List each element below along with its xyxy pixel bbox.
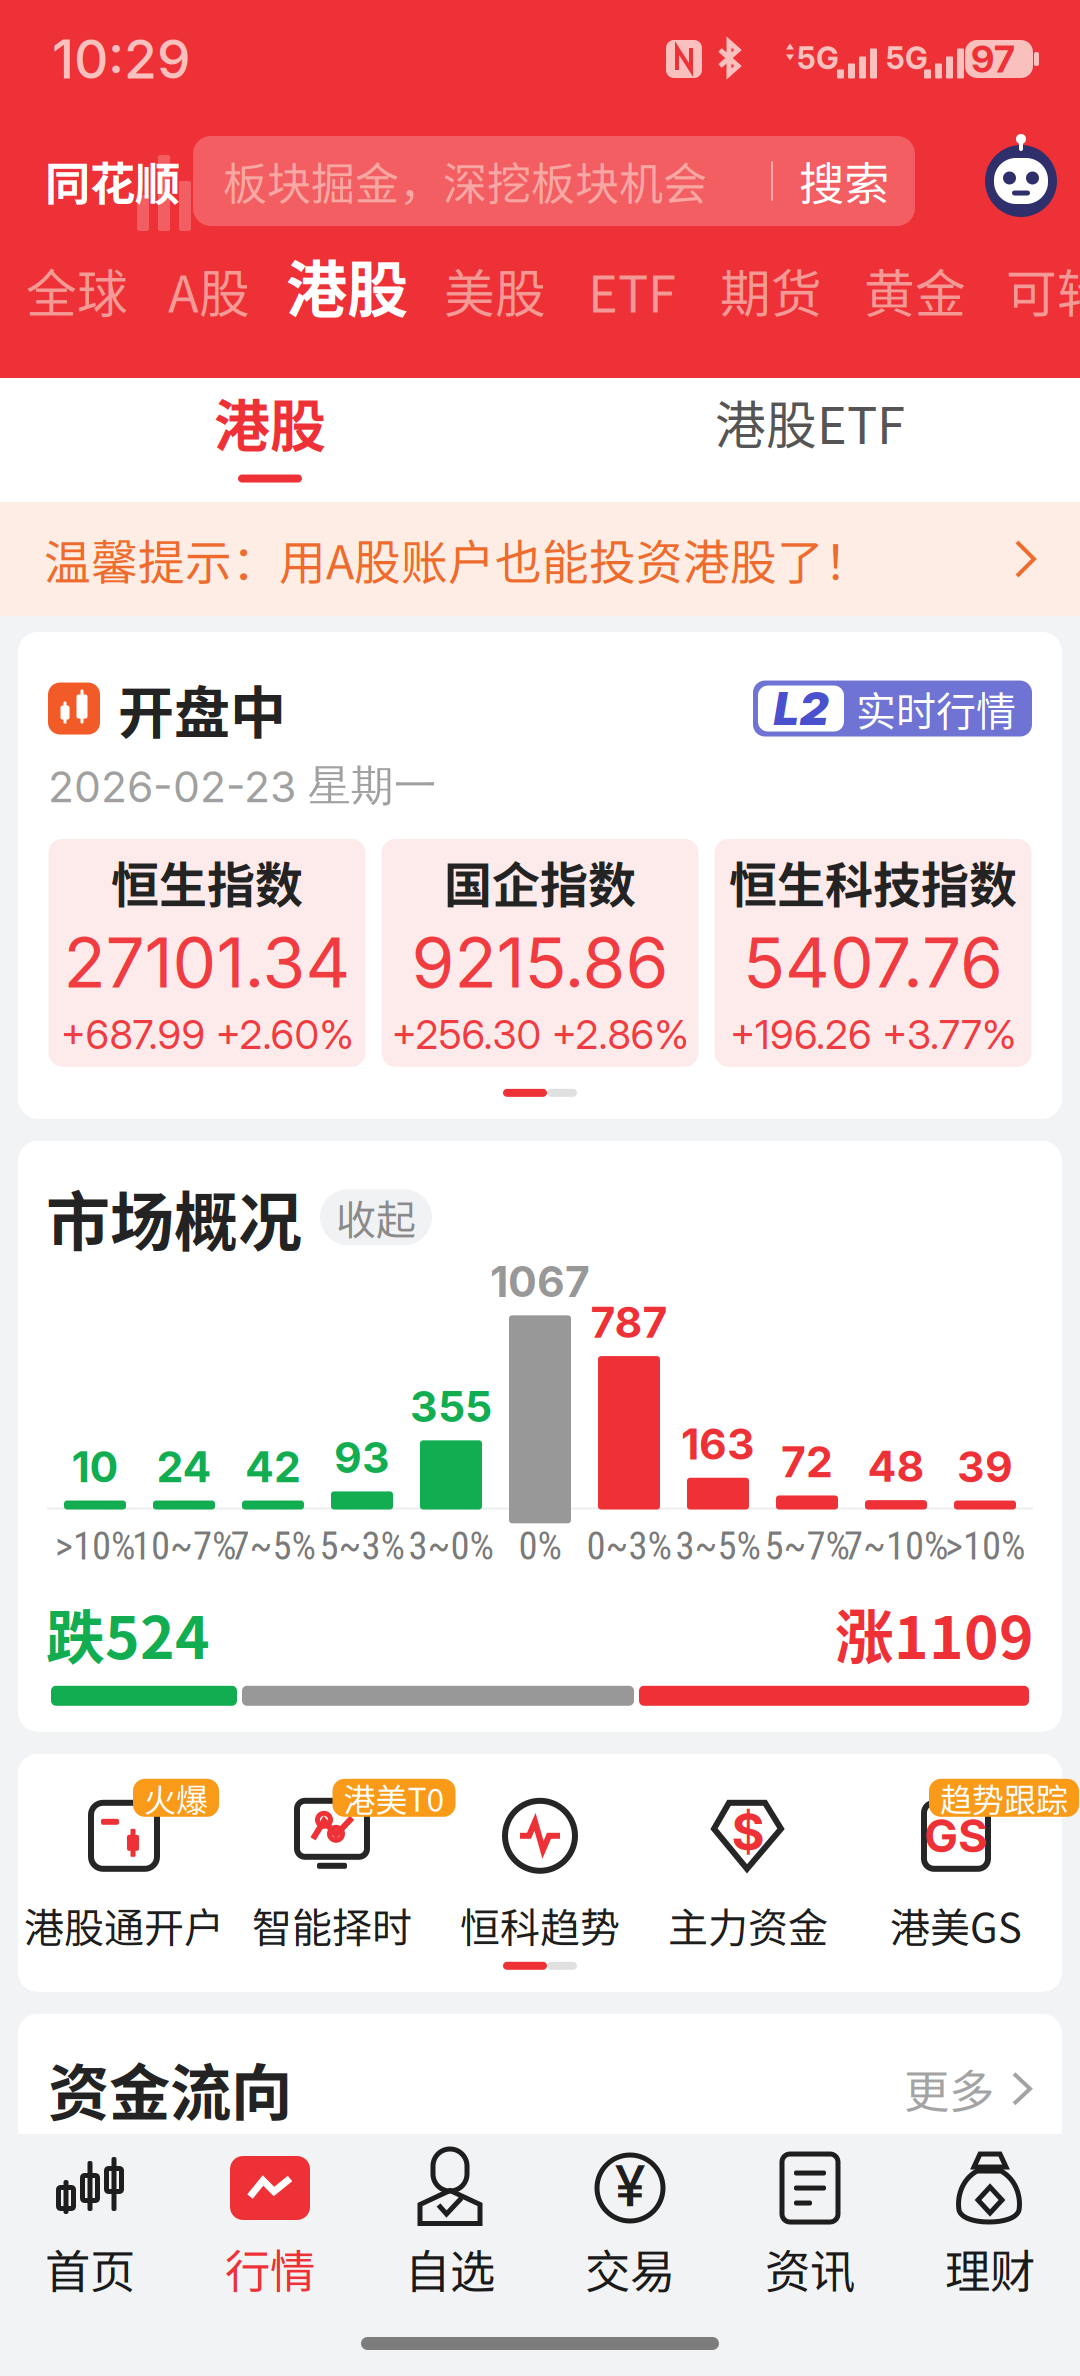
button[interactable]: AI assistant xyxy=(984,144,1058,218)
staticText: 理财 xyxy=(945,2236,1035,2302)
staticText: 93 xyxy=(334,1432,390,1483)
button[interactable]: ¥ xyxy=(540,2134,720,2302)
button[interactable]: 资讯 xyxy=(720,2134,900,2302)
staticText: 港股 xyxy=(214,381,326,463)
staticText: 3~0% xyxy=(408,1523,493,1569)
staticText: 7~5% xyxy=(230,1523,315,1569)
staticText: ETF xyxy=(588,254,676,327)
staticText: 板块掘金，深挖板块机会 xyxy=(223,149,707,213)
staticText: 9215.86 xyxy=(411,920,668,1004)
staticText: GS xyxy=(924,1808,988,1863)
button[interactable]: 首页 xyxy=(0,2134,180,2302)
staticText: 10:29 xyxy=(52,27,191,91)
staticText: >10% xyxy=(945,1523,1025,1569)
staticText: 温馨提示：用A股账户也能投资港股了！ xyxy=(44,525,871,593)
button[interactable]: 理财 xyxy=(900,2134,1080,2302)
staticText: 787 xyxy=(590,1296,667,1348)
staticText: 10 xyxy=(71,1441,118,1492)
button[interactable]: $ xyxy=(644,1776,852,1952)
staticText: 可转债 xyxy=(1006,254,1080,327)
staticText: 同花顺 xyxy=(45,148,180,214)
button[interactable]: ETF xyxy=(566,254,698,330)
staticText: 首页 xyxy=(45,2236,135,2302)
staticText: ¥ xyxy=(614,2152,645,2220)
button[interactable]: 国企指数 xyxy=(381,839,698,1067)
staticText: +687.99 +2.60% xyxy=(60,1010,353,1059)
staticText: +196.26 +3.77% xyxy=(730,1010,1016,1059)
button[interactable]: 美股 xyxy=(424,254,566,330)
staticText: 涨1109 xyxy=(835,1591,1034,1676)
staticText: 27101.34 xyxy=(63,920,350,1004)
button[interactable]: 港股ETF xyxy=(540,378,1080,502)
staticText: 趋势跟踪 xyxy=(940,1775,1068,1821)
staticText: $ xyxy=(731,1801,764,1862)
staticText: 行情 xyxy=(225,2236,315,2302)
button[interactable]: A股 xyxy=(148,254,270,330)
button[interactable]: 恒科趋势 xyxy=(436,1776,644,1952)
staticText: 自选 xyxy=(405,2236,495,2302)
button[interactable]: 板块掘金，深挖板块机会 xyxy=(193,136,915,226)
staticText: >10% xyxy=(55,1523,135,1569)
staticText: 收起 xyxy=(336,1188,416,1246)
staticText: 美股 xyxy=(444,254,546,327)
button[interactable]: GS xyxy=(852,1776,1060,1952)
staticText: 5G xyxy=(886,39,928,76)
button[interactable]: 黄金 xyxy=(844,254,986,330)
staticText: 1067 xyxy=(490,1256,590,1307)
staticText: 42 xyxy=(245,1441,301,1492)
staticText: 期货 xyxy=(720,254,822,327)
staticText: 智能择时 xyxy=(252,1896,412,1954)
button[interactable]: 港股 xyxy=(0,378,540,502)
staticText: 资讯 xyxy=(765,2236,855,2302)
staticText: +256.30 +2.86% xyxy=(391,1010,688,1059)
staticText: 355 xyxy=(410,1381,492,1432)
staticText: 0~3% xyxy=(586,1523,671,1569)
staticText: 3~5% xyxy=(675,1523,760,1569)
staticText: 港美T0 xyxy=(343,1775,444,1821)
staticText: 全球 xyxy=(26,254,128,327)
staticText: 2026-02-23 星期一 xyxy=(48,759,437,813)
staticText: 5~3% xyxy=(319,1523,404,1569)
staticText: 交易 xyxy=(585,2236,675,2302)
staticText: 恒科趋势 xyxy=(460,1896,620,1954)
button[interactable]: 恒生科技指数 xyxy=(714,839,1031,1067)
button[interactable]: 火爆 xyxy=(20,1776,228,1952)
staticText: 39 xyxy=(957,1441,1013,1492)
staticText: A股 xyxy=(168,254,250,327)
button[interactable]: 更多 xyxy=(904,2056,1032,2122)
button[interactable]: 温馨提示：用A股账户也能投资港股了！ xyxy=(0,502,1080,616)
staticText: 5407.76 xyxy=(743,920,1003,1004)
staticText: 火爆 xyxy=(144,1775,208,1821)
button[interactable]: 期货 xyxy=(698,254,844,330)
staticText: 实时行情 xyxy=(856,680,1016,737)
staticText: 恒生科技指数 xyxy=(729,847,1017,916)
staticText: 国企指数 xyxy=(444,847,636,916)
staticText: 更多 xyxy=(904,2056,994,2122)
staticText: 搜索 xyxy=(799,148,889,214)
staticText: 主力资金 xyxy=(668,1896,828,1954)
button[interactable]: 自选 xyxy=(360,2134,540,2302)
button[interactable]: 恒生指数 xyxy=(48,839,365,1067)
staticText: 恒生指数 xyxy=(111,847,303,916)
button[interactable]: 收起 xyxy=(320,1189,432,1245)
button[interactable]: 港美T0 xyxy=(228,1776,436,1952)
staticText: 黄金 xyxy=(864,254,966,327)
staticText: 港美GS xyxy=(890,1896,1022,1954)
staticText: 开盘中 xyxy=(118,668,286,749)
staticText: 10~7% xyxy=(132,1523,236,1569)
staticText: 港股 xyxy=(286,241,408,330)
staticText: 5G xyxy=(797,39,839,76)
staticText: L2 xyxy=(773,681,828,736)
staticText: 资金流向 xyxy=(48,2044,292,2133)
button[interactable]: 港股 xyxy=(270,241,424,330)
staticText: 市场概况 xyxy=(46,1171,302,1263)
button[interactable]: 行情 xyxy=(180,2134,360,2302)
staticText: 163 xyxy=(681,1418,755,1470)
staticText: 跌524 xyxy=(46,1591,210,1676)
staticText: 7~10% xyxy=(844,1523,948,1569)
button[interactable]: 全球 xyxy=(4,254,148,330)
button[interactable]: 可转债 xyxy=(986,254,1080,330)
staticText: 5~7% xyxy=(764,1523,849,1569)
staticText: 48 xyxy=(867,1440,924,1492)
staticText: 24 xyxy=(156,1441,211,1492)
